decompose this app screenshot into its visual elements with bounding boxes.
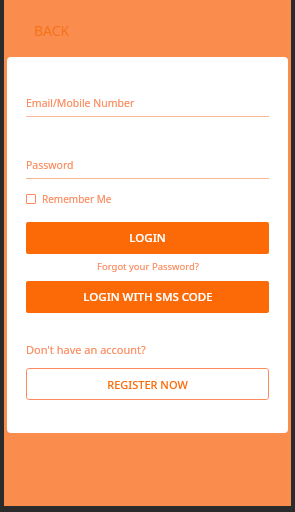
- button[interactable]: BACK: [30, 18, 74, 43]
- staticText: LOGIN WITH SMS CODE: [83, 289, 213, 305]
- staticText: Email/Mobile Number: [26, 96, 135, 110]
- staticText: Password: [26, 158, 74, 172]
- button[interactable]: LOGIN WITH SMS CODE: [26, 281, 269, 313]
- staticText: Don't have an account?: [26, 342, 146, 357]
- staticText: BACK: [34, 21, 70, 40]
- staticText: Remember Me: [42, 192, 112, 206]
- button[interactable]: LOGIN: [26, 222, 269, 254]
- button[interactable]: REGISTER NOW: [26, 368, 269, 400]
- staticText: LOGIN: [129, 230, 166, 246]
- button[interactable]: Forgot your Password?: [26, 260, 269, 273]
- button[interactable]: Remember Me: [26, 190, 112, 208]
- staticText: Forgot your Password?: [97, 260, 199, 273]
- staticText: REGISTER NOW: [107, 377, 188, 392]
